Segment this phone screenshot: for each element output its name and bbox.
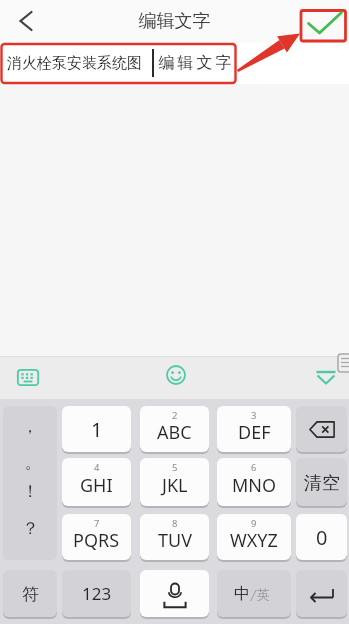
staticText: 中: [234, 584, 250, 604]
button[interactable]: 符: [3, 570, 57, 617]
button[interactable]: 9: [217, 514, 291, 560]
staticText: ，: [22, 417, 38, 437]
staticText: 符: [22, 584, 39, 605]
button[interactable]: 消火栓泵安装系统图: [0, 43, 349, 84]
staticText: DEF: [238, 420, 271, 445]
staticText: ！: [22, 481, 39, 501]
staticText: 9: [251, 517, 257, 530]
button[interactable]: 清空: [296, 458, 347, 506]
button[interactable]: 2: [140, 406, 209, 452]
staticText: 6: [251, 461, 257, 474]
button[interactable]: 5: [140, 458, 209, 506]
staticText: WXYZ: [230, 528, 278, 553]
staticText: 7: [94, 517, 100, 530]
staticText: MNO: [232, 473, 277, 498]
staticText: ？: [22, 518, 39, 538]
button[interactable]: [296, 406, 347, 452]
staticText: JKL: [162, 473, 188, 498]
staticText: 。: [25, 453, 41, 473]
button[interactable]: 1: [62, 406, 131, 452]
staticText: 3: [251, 409, 257, 422]
staticText: 编辑文字: [157, 53, 233, 73]
staticText: GHI: [80, 473, 113, 498]
staticText: 编辑文字: [0, 10, 349, 33]
button[interactable]: [296, 570, 347, 617]
staticText: 清空: [304, 472, 340, 495]
button[interactable]: [308, 361, 344, 395]
staticText: PQRS: [73, 528, 120, 553]
button[interactable]: 3: [217, 406, 291, 452]
button[interactable]: ，: [3, 406, 57, 560]
staticText: 1: [91, 416, 103, 443]
button[interactable]: [140, 570, 209, 617]
staticText: 消火栓泵安装系统图: [7, 54, 142, 73]
button[interactable]: 0: [296, 514, 347, 560]
staticText: 0: [316, 524, 328, 551]
staticText: 4: [94, 461, 100, 474]
staticText: 2: [172, 409, 178, 422]
staticText: /英: [250, 586, 270, 602]
button[interactable]: [10, 360, 46, 394]
button[interactable]: 6: [217, 458, 291, 506]
staticText: 123: [82, 582, 112, 605]
staticText: 8: [172, 517, 178, 530]
staticText: 5: [172, 461, 178, 474]
button[interactable]: 7: [62, 514, 131, 560]
button[interactable]: 8: [140, 514, 209, 560]
staticText: TUV: [158, 528, 192, 553]
button[interactable]: [301, 8, 346, 41]
button[interactable]: [158, 358, 194, 392]
button[interactable]: 4: [62, 458, 131, 506]
button[interactable]: 123: [62, 570, 131, 617]
button[interactable]: [8, 4, 44, 38]
button[interactable]: 中: [217, 570, 291, 617]
staticText: ABC: [157, 420, 192, 445]
